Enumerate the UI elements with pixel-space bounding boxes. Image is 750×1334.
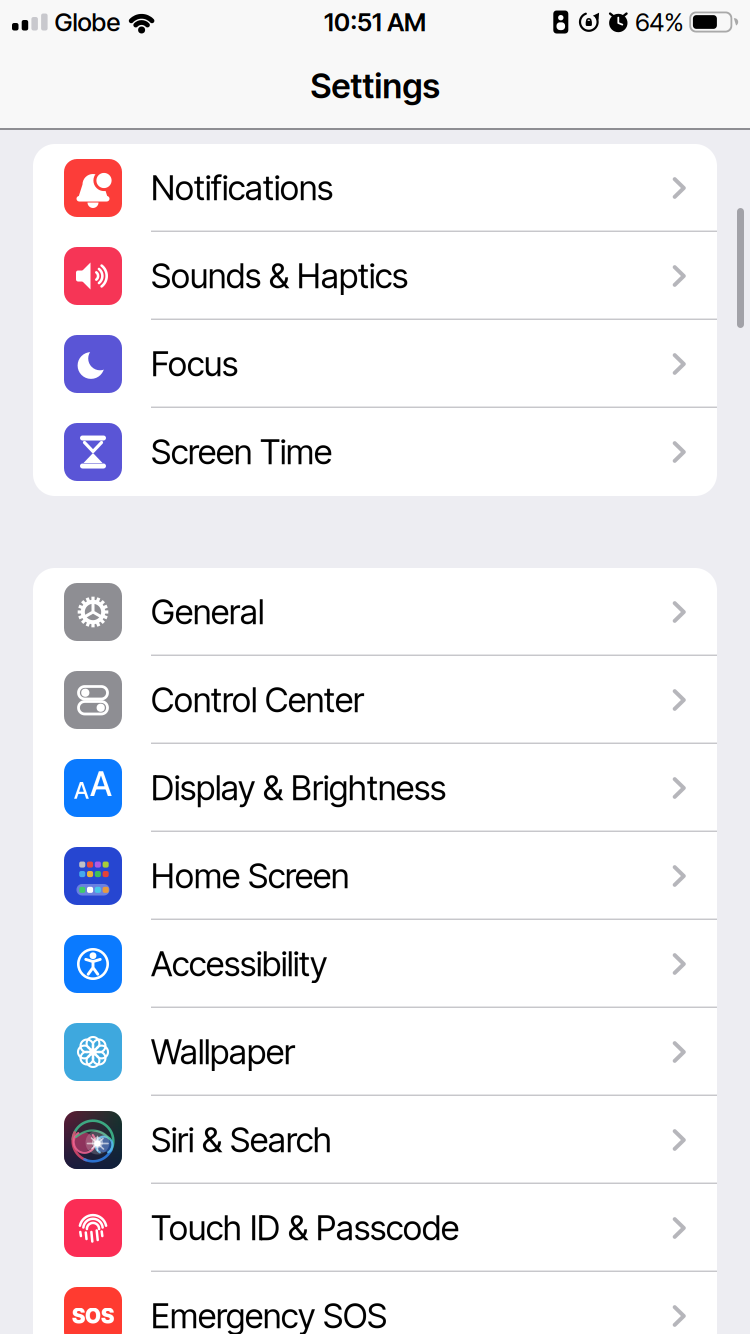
staticText: Accessibility (151, 943, 327, 984)
staticText: SOS (72, 1303, 114, 1328)
staticText: A (74, 777, 89, 804)
staticText: Sounds & Haptics (151, 255, 408, 296)
button[interactable]: SOS (33, 1272, 717, 1334)
staticText: Touch ID & Passcode (151, 1207, 459, 1248)
staticText: Settings (310, 65, 439, 106)
button[interactable]: Wallpaper (33, 1008, 717, 1096)
staticText: A (90, 764, 112, 804)
staticText: Screen Time (151, 431, 332, 472)
staticText: General (151, 591, 264, 632)
button[interactable]: Control Center (33, 656, 717, 744)
button[interactable]: Siri & Search (33, 1096, 717, 1184)
button[interactable]: A (33, 744, 717, 832)
staticText: Display & Brightness (151, 767, 446, 808)
staticText: Emergency SOS (151, 1295, 387, 1334)
button[interactable]: Focus (33, 320, 717, 408)
button[interactable]: Home Screen (33, 832, 717, 920)
staticText: Wallpaper (151, 1031, 295, 1072)
staticText: Control Center (151, 679, 364, 720)
button[interactable]: Screen Time (33, 408, 717, 496)
staticText: Focus (151, 343, 238, 384)
button[interactable]: Accessibility (33, 920, 717, 1008)
staticText: Siri & Search (151, 1119, 332, 1160)
button[interactable]: General (33, 568, 717, 656)
staticText: Notifications (151, 167, 333, 208)
staticText: Home Screen (151, 855, 349, 896)
staticText: 64% (635, 7, 683, 37)
staticText: 10:51 AM (324, 7, 426, 37)
button[interactable]: Touch ID & Passcode (33, 1184, 717, 1272)
button[interactable]: Sounds & Haptics (33, 232, 717, 320)
button[interactable]: Notifications (33, 144, 717, 232)
staticText: Globe (55, 7, 121, 37)
